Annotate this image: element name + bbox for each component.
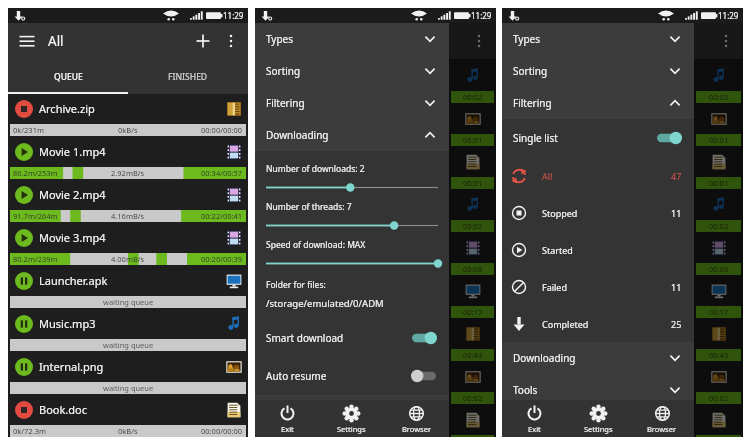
staticText: Single list: [513, 131, 558, 145]
button[interactable]: Movie 2.mp4: [8, 180, 248, 223]
staticText: Speed of download: MAX: [266, 239, 366, 251]
button[interactable]: All: [502, 157, 694, 194]
staticText: Started: [542, 244, 573, 256]
staticText: 00:20/00:39: [201, 254, 243, 264]
staticText: Settings: [584, 424, 613, 434]
staticText: Movie 2.mp4: [39, 187, 106, 202]
button[interactable]: Exit: [502, 400, 566, 437]
staticText: 00:01: [709, 135, 729, 145]
staticText: Completed: [542, 318, 589, 330]
staticText: 11:29: [718, 10, 739, 21]
button[interactable]: Started: [502, 231, 694, 268]
button[interactable]: Movie 3.mp4: [8, 223, 248, 266]
staticText: Filtering: [266, 96, 305, 110]
staticText: 0kB/s: [118, 426, 138, 436]
button[interactable]: Filtering: [502, 87, 694, 119]
staticText: 00:17: [463, 307, 483, 317]
staticText: Book.doc: [39, 402, 87, 417]
staticText: 00:02: [463, 221, 483, 231]
staticText: 00:17: [709, 307, 729, 317]
staticText: 00:02: [709, 393, 729, 403]
staticText: 00:08: [709, 264, 729, 274]
staticText: Exit: [281, 424, 294, 434]
staticText: 00:01: [463, 178, 483, 188]
staticText: 00:08: [463, 264, 483, 274]
button[interactable]: Settings: [319, 400, 384, 437]
staticText: 0k/72.3m: [13, 426, 46, 436]
button[interactable]: Movie 1.mp4: [8, 137, 248, 180]
button[interactable]: Downloading: [502, 342, 694, 374]
button[interactable]: Stopped: [502, 194, 694, 231]
staticText: 0kB/s: [118, 125, 138, 135]
staticText: 25: [671, 318, 682, 330]
button[interactable]: Archive.zip: [8, 94, 248, 137]
staticText: Auto resume: [266, 369, 327, 383]
button[interactable]: Failed: [502, 268, 694, 305]
staticText: 11: [671, 207, 682, 219]
staticText: Browser: [402, 424, 432, 434]
button[interactable]: Smart download: [255, 319, 449, 357]
staticText: 86.2m/253m: [13, 168, 58, 178]
button[interactable]: Music.mp3: [8, 309, 248, 352]
staticText: 11:29: [223, 10, 244, 21]
staticText: Sorting: [513, 64, 548, 78]
button[interactable]: Browser: [630, 400, 694, 437]
staticText: Downloading: [266, 128, 329, 142]
staticText: 00:02: [463, 393, 483, 403]
button[interactable]: FINISHED: [128, 59, 248, 94]
button[interactable]: Auto resume: [255, 357, 449, 395]
staticText: Music.mp3: [39, 316, 96, 331]
staticText: 00:43: [709, 350, 729, 360]
staticText: Types: [266, 32, 294, 46]
button[interactable]: Downloading: [255, 119, 449, 151]
button[interactable]: Tools: [255, 395, 449, 427]
button[interactable]: QUEUE: [8, 59, 128, 94]
button[interactable]: Sorting: [502, 55, 694, 87]
button[interactable]: Filtering: [255, 87, 449, 119]
staticText: Exit: [528, 424, 541, 434]
staticText: All: [48, 32, 64, 50]
staticText: waiting queue: [103, 340, 154, 350]
staticText: Archive.zip: [39, 101, 95, 116]
staticText: FINISHED: [168, 71, 208, 83]
staticText: 4.00mB/s: [111, 254, 145, 264]
staticText: Number of downloads: 2: [266, 163, 365, 175]
button[interactable]: More options: [222, 32, 240, 50]
staticText: Tools: [266, 404, 291, 418]
button[interactable]: Sorting: [255, 55, 449, 87]
button[interactable]: Completed: [502, 305, 694, 342]
staticText: Movie 3.mp4: [39, 230, 106, 245]
staticText: 11: [671, 281, 682, 293]
staticText: 47: [671, 170, 682, 182]
staticText: 00:00/00:00: [201, 125, 243, 135]
staticText: Types: [513, 32, 541, 46]
button[interactable]: Settings: [566, 400, 630, 437]
button[interactable]: Browser: [384, 400, 449, 437]
button[interactable]: Launcher.apk: [8, 266, 248, 309]
button[interactable]: Internal.png: [8, 352, 248, 395]
button[interactable]: Tools: [502, 374, 694, 406]
staticText: 00:01: [463, 135, 483, 145]
staticText: 00:02: [463, 92, 483, 102]
staticText: Settings: [337, 424, 366, 434]
button[interactable]: Exit: [255, 400, 319, 437]
button[interactable]: Types: [255, 23, 449, 55]
staticText: 00:34/00:57: [201, 168, 243, 178]
staticText: Filtering: [513, 96, 552, 110]
staticText: 0k/231m: [13, 125, 44, 135]
staticText: 00:22/00:41: [201, 211, 243, 221]
staticText: Browser: [647, 424, 677, 434]
button[interactable]: Menu: [18, 32, 36, 50]
staticText: 80.2m/239m: [13, 254, 58, 264]
button[interactable]: Add: [194, 32, 212, 50]
staticText: /storage/emulated/0/ADM: [266, 297, 384, 310]
staticText: Folder for files:: [266, 279, 326, 291]
staticText: Stopped: [542, 207, 578, 219]
button[interactable]: Book.doc: [8, 395, 248, 437]
button[interactable]: Single list: [502, 119, 694, 157]
staticText: waiting queue: [103, 297, 154, 307]
staticText: Number of threads: 7: [266, 201, 352, 213]
staticText: QUEUE: [54, 71, 83, 83]
staticText: 4.16mB/s: [111, 211, 145, 221]
button[interactable]: Types: [502, 23, 694, 55]
